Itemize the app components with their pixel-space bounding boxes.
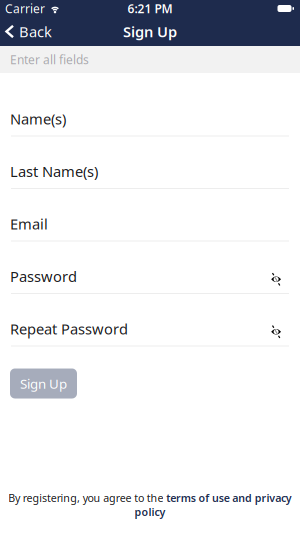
staticText: Carrier [5,0,45,16]
button[interactable]: Back [5,22,52,41]
button[interactable] [269,269,283,283]
staticText: Password [10,266,77,286]
staticText: policy [134,505,165,519]
staticText: Back [19,22,52,41]
staticText: terms of use and privacy [166,491,292,505]
staticText: Repeat Password [10,319,128,338]
button[interactable] [269,322,283,336]
staticText: 6:21 PM [127,0,172,16]
staticText: Email [10,214,48,233]
button[interactable]: policy [134,505,165,519]
button[interactable]: terms of use and privacy [166,491,292,505]
staticText: Enter all fields [10,51,89,67]
staticText: Name(s) [10,109,66,128]
button[interactable]: Sign Up [10,368,77,398]
staticText: Sign Up [123,22,177,41]
staticText: Sign Up [20,375,67,392]
staticText: By registering, you agree to the [8,491,166,505]
staticText: Last Name(s) [10,161,98,181]
